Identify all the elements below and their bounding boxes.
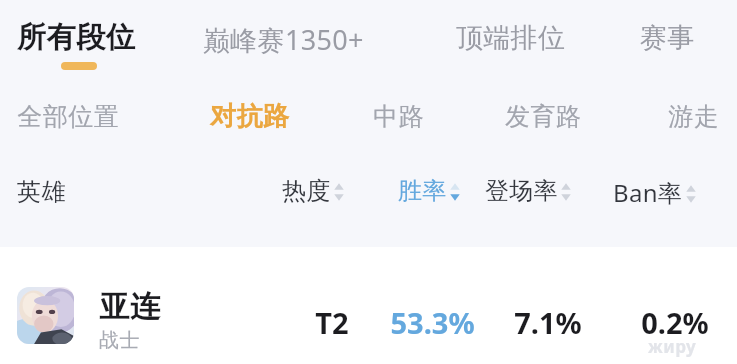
staticText: 登场率: [485, 176, 558, 206]
staticText: 战士: [99, 328, 140, 353]
button[interactable]: 发育路: [505, 101, 582, 132]
staticText: 赛事: [640, 21, 695, 55]
staticText: 热度: [282, 176, 331, 206]
button[interactable]: 游走: [668, 101, 719, 132]
button[interactable]: Sort by popularity: [332, 178, 346, 204]
button[interactable]: Ban率: [613, 176, 698, 209]
button[interactable]: 顶端排位: [456, 21, 566, 55]
button[interactable]: 赛事: [640, 21, 695, 55]
staticText: Ban率: [613, 176, 683, 209]
staticText: 胜率: [398, 176, 447, 206]
button[interactable]: 对抗路: [210, 100, 290, 133]
staticText: 对抗路: [210, 100, 290, 133]
button[interactable]: 所有段位: [17, 19, 135, 56]
staticText: 7.1%: [514, 303, 582, 342]
button[interactable]: 中路: [373, 101, 424, 132]
staticText: жиру: [648, 335, 697, 358]
staticText: 亚连: [99, 288, 160, 326]
staticText: 全部位置: [17, 101, 119, 132]
staticText: 0.2%: [641, 303, 709, 342]
staticText: 中路: [373, 101, 424, 132]
staticText: 所有段位: [17, 19, 135, 56]
button[interactable]: Sort by ban rate: [684, 180, 698, 206]
button[interactable]: Sort by pick rate: [559, 178, 573, 204]
button[interactable]: 巅峰赛1350+: [203, 21, 364, 58]
staticText: 顶端排位: [456, 21, 566, 55]
staticText: T2: [315, 303, 349, 342]
staticText: 巅峰赛1350+: [203, 21, 364, 58]
button[interactable]: 亚连: [0, 247, 737, 364]
staticText: 发育路: [505, 101, 582, 132]
button[interactable]: 全部位置: [17, 101, 119, 132]
button[interactable]: 胜率: [398, 176, 462, 206]
button[interactable]: Sort by win rate: [448, 178, 462, 204]
staticText: 英雄: [17, 177, 66, 207]
staticText: 53.3%: [390, 303, 475, 342]
button[interactable]: 热度: [282, 176, 346, 206]
button[interactable]: 登场率: [485, 176, 573, 206]
staticText: 游走: [668, 101, 719, 132]
